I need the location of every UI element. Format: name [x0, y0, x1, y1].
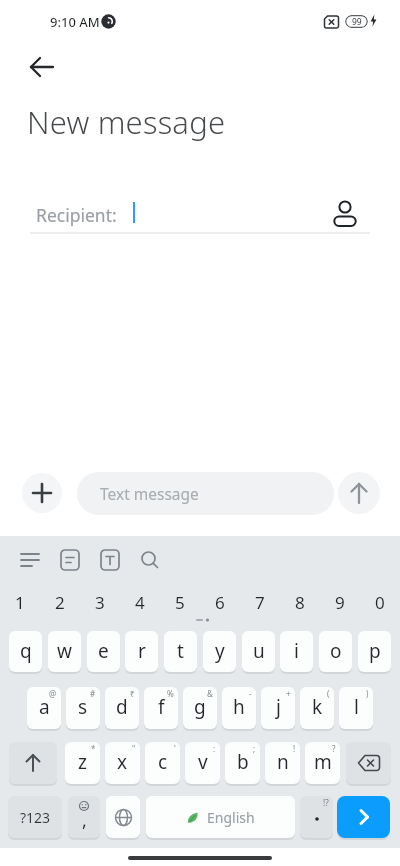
staticText: ₹ — [130, 688, 135, 699]
staticText: c — [158, 749, 168, 775]
button[interactable]: t — [164, 631, 197, 672]
button[interactable] — [9, 742, 57, 784]
staticText: @ — [49, 688, 57, 699]
button[interactable] — [22, 473, 62, 513]
button[interactable]: n — [265, 742, 300, 784]
button[interactable] — [338, 472, 380, 514]
button[interactable]: 2 — [40, 588, 80, 616]
button[interactable]: w — [48, 631, 81, 672]
button[interactable]: 5 — [160, 588, 200, 616]
button[interactable] — [106, 796, 140, 838]
button[interactable]: q — [9, 631, 42, 672]
staticText: 5 — [175, 591, 185, 614]
staticText: 1 — [15, 591, 25, 614]
staticText: d — [116, 694, 128, 720]
button[interactable]: i — [280, 631, 313, 672]
button[interactable]: !? — [300, 796, 333, 838]
staticText: * — [91, 743, 96, 754]
button[interactable]: h — [222, 687, 256, 729]
button[interactable] — [136, 546, 164, 574]
button[interactable]: 1 — [0, 588, 40, 616]
staticText: y — [215, 638, 225, 664]
button[interactable]: 8 — [280, 588, 320, 616]
button[interactable]: z — [65, 742, 100, 784]
button[interactable]: , — [68, 796, 100, 838]
staticText: 7 — [255, 591, 265, 614]
button[interactable]: o — [319, 631, 352, 672]
staticText: p — [369, 638, 381, 664]
button[interactable]: x — [105, 742, 140, 784]
button[interactable]: 0 — [360, 588, 400, 616]
staticText: !? — [323, 797, 329, 808]
staticText: q — [20, 638, 32, 664]
staticText: s — [78, 694, 88, 720]
staticText: u — [253, 638, 265, 664]
button[interactable] — [337, 796, 390, 838]
button[interactable]: v — [185, 742, 220, 784]
button[interactable]: m — [305, 742, 340, 784]
staticText: ' — [174, 743, 176, 754]
button[interactable]: Recipient: — [0, 192, 400, 236]
button[interactable]: g — [183, 687, 217, 729]
staticText: n — [277, 749, 289, 775]
staticText: Recipient: — [36, 203, 117, 227]
button[interactable]: l — [339, 687, 373, 729]
button[interactable]: ?123 — [8, 796, 62, 838]
button[interactable]: 3 — [80, 588, 120, 616]
button[interactable]: 7 — [240, 588, 280, 616]
staticText: " — [132, 743, 136, 754]
staticText: e — [98, 638, 109, 664]
button[interactable]: c — [145, 742, 180, 784]
staticText: English — [207, 808, 255, 827]
button[interactable]: Text message — [77, 472, 334, 515]
button[interactable]: e — [87, 631, 120, 672]
button[interactable]: f — [144, 687, 178, 729]
staticText: k — [312, 694, 323, 720]
staticText: ) — [366, 688, 369, 699]
button[interactable]: 6 — [200, 588, 240, 616]
button[interactable] — [346, 742, 391, 784]
button[interactable]: j — [261, 687, 295, 729]
staticText: a — [39, 694, 50, 720]
staticText: 8 — [295, 591, 305, 614]
button[interactable]: k — [300, 687, 334, 729]
staticText: g — [194, 694, 206, 720]
staticText: 9 — [335, 591, 345, 614]
staticText: - — [249, 688, 252, 699]
button[interactable] — [16, 546, 44, 574]
button[interactable]: English — [146, 796, 295, 838]
staticText: l — [354, 694, 359, 720]
staticText: New message — [27, 101, 226, 143]
button[interactable]: r — [125, 631, 158, 672]
staticText: 9:10 AM — [50, 13, 100, 31]
staticText: + — [286, 688, 291, 699]
staticText: ; — [253, 743, 256, 754]
button[interactable] — [56, 546, 84, 574]
button[interactable] — [20, 45, 64, 89]
staticText: z — [78, 749, 87, 775]
staticText: Text message — [100, 483, 199, 504]
button[interactable]: u — [242, 631, 275, 672]
button[interactable] — [96, 546, 124, 574]
staticText: 99 — [352, 16, 362, 28]
staticText: , — [82, 808, 87, 833]
button[interactable]: y — [203, 631, 236, 672]
staticText: 4 — [135, 591, 145, 614]
staticText: 0 — [375, 591, 385, 614]
button[interactable]: p — [358, 631, 391, 672]
button[interactable]: s — [66, 687, 100, 729]
staticText: j — [276, 694, 281, 720]
staticText: f — [158, 694, 165, 720]
button[interactable]: b — [225, 742, 260, 784]
button[interactable]: 4 — [120, 588, 160, 616]
staticText: v — [198, 749, 208, 775]
staticText: : — [213, 743, 216, 754]
staticText: r — [138, 638, 146, 664]
staticText: b — [237, 749, 249, 775]
staticText: ? — [332, 743, 336, 754]
staticText: 2 — [55, 591, 65, 614]
button[interactable]: 9 — [320, 588, 360, 616]
button[interactable]: d — [105, 687, 139, 729]
staticText: t — [177, 638, 184, 664]
button[interactable]: a — [27, 687, 61, 729]
